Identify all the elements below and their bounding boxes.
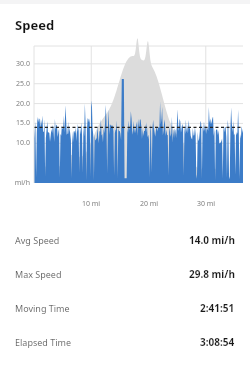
staticText: mi/h <box>5 178 30 188</box>
staticText: 30.0 <box>5 59 30 69</box>
staticText: 30 mi <box>191 199 221 209</box>
staticText: 10 mi <box>76 199 106 209</box>
staticText: 10.0 <box>5 138 30 148</box>
staticText: Speed <box>15 16 55 34</box>
staticText: Elapsed Time <box>15 336 71 348</box>
staticText: 2:41:51 <box>200 301 235 315</box>
button[interactable]: Moving Time <box>0 291 250 325</box>
button[interactable]: Max Speed <box>0 257 250 291</box>
staticText: Moving Time <box>15 302 70 314</box>
button[interactable]: Avg Speed <box>0 223 250 257</box>
staticText: 29.8 mi/h <box>189 267 235 281</box>
staticText: 14.0 mi/h <box>189 233 235 247</box>
staticText: 25.0 <box>5 79 30 89</box>
staticText: 3:08:54 <box>200 335 235 349</box>
staticText: 20 mi <box>134 199 164 209</box>
staticText: Max Speed <box>15 268 62 280</box>
staticText: Avg Speed <box>15 234 60 246</box>
staticText: 15.0 <box>5 118 30 128</box>
staticText: 20.0 <box>5 99 30 109</box>
button[interactable]: Elapsed Time <box>0 325 250 359</box>
